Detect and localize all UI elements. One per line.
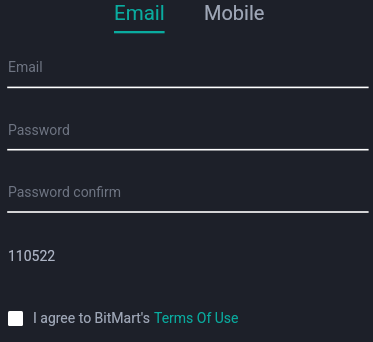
button[interactable]: Email [0,49,373,95]
staticText: 110522 [8,248,56,264]
button[interactable]: Password confirm [0,174,373,220]
button[interactable]: Mobile [198,0,270,36]
staticText: Password [8,122,70,138]
button[interactable]: Terms Of Use [154,303,239,333]
staticText: Email [8,59,43,75]
button[interactable]: I agree checkbox [0,303,239,333]
staticText: Email [114,1,165,25]
button[interactable]: Password [0,112,373,158]
staticText: Mobile [204,1,265,24]
button[interactable]: 110522 [0,243,373,269]
staticText: I agree to BitMart's [33,310,154,326]
other: I agree checkbox [8,311,23,326]
staticText: Terms Of Use [154,310,239,326]
staticText: Password confirm [8,184,122,200]
button[interactable]: Email [106,0,172,36]
